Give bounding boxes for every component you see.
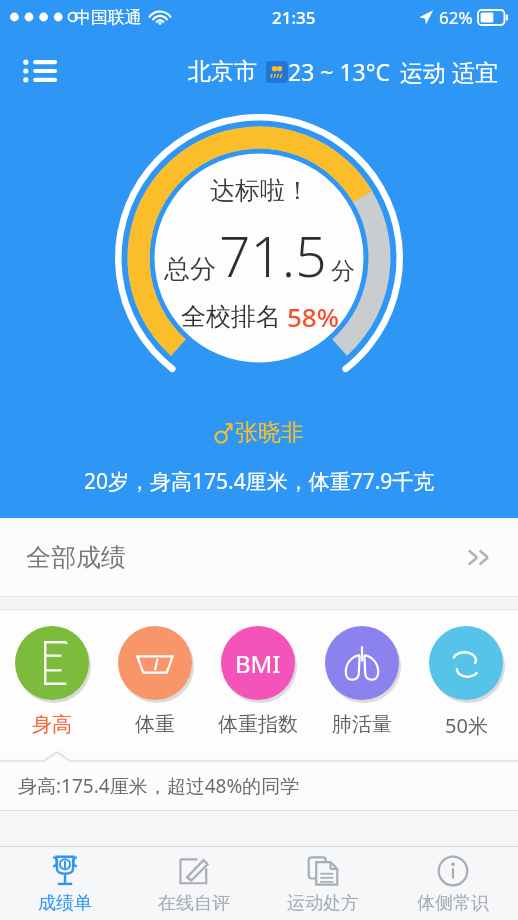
staticText: 运动 适宜 <box>400 56 498 87</box>
staticText: 全部成绩 <box>26 542 126 573</box>
staticText: 成绩单 <box>38 892 92 915</box>
button[interactable]: 50米 <box>414 610 518 750</box>
button[interactable]: 北京市 <box>188 56 498 87</box>
staticText: 体重指数 <box>218 712 298 737</box>
staticText: 总分 <box>164 253 216 286</box>
staticText: 中国联通 <box>74 7 142 28</box>
button[interactable]: 在线自评 <box>129 847 258 920</box>
staticText: 北京市 <box>188 57 257 86</box>
button[interactable]: 成绩单 <box>0 847 129 920</box>
staticText: 21:35 <box>272 6 316 29</box>
staticText: BMI <box>235 647 281 680</box>
button[interactable]: 体侧常识 <box>388 847 518 920</box>
staticText: 62% <box>439 6 473 29</box>
button[interactable]: 运动处方 <box>258 847 388 920</box>
staticText: 体重 <box>135 712 175 737</box>
button[interactable]: BMI <box>206 610 310 750</box>
staticText: 肺活量 <box>332 712 392 737</box>
button[interactable]: 肺活量 <box>310 610 414 750</box>
staticText: 身高:175.4厘米，超过48%的同学 <box>18 773 300 799</box>
staticText: 张晓非 <box>235 418 304 447</box>
button[interactable]: 全部成绩 <box>0 518 518 596</box>
staticText: 23 ~ 13°C <box>288 56 391 87</box>
staticText: 身高 <box>32 712 72 737</box>
staticText: 58% <box>287 299 339 334</box>
staticText: 达标啦！ <box>210 175 310 206</box>
staticText: 体侧常识 <box>417 892 489 915</box>
staticText: 分 <box>331 256 355 286</box>
staticText: 在线自评 <box>158 892 230 915</box>
staticText: 71.5 <box>219 218 327 293</box>
button[interactable]: Menu <box>16 47 64 95</box>
button[interactable]: 体重 <box>103 610 206 750</box>
staticText: 20岁，身高175.4厘米，体重77.9千克 <box>84 467 435 496</box>
staticText: 50米 <box>445 712 488 739</box>
button[interactable]: 身高 <box>0 610 103 750</box>
staticText: 运动处方 <box>287 892 359 915</box>
staticText: 全校排名 <box>181 301 281 332</box>
